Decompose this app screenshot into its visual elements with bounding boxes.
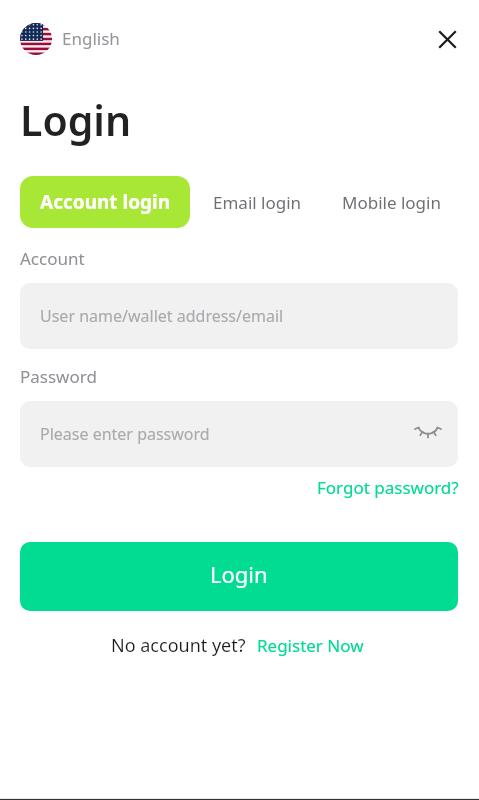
staticText: Login — [210, 559, 268, 589]
button[interactable]: User name/wallet address/email — [20, 283, 458, 349]
button[interactable]: Mobile login — [322, 176, 461, 228]
button[interactable]: Please enter password — [20, 401, 458, 467]
button[interactable]: Email login — [193, 176, 322, 228]
button[interactable]: English — [20, 23, 120, 55]
staticText: Account login — [40, 189, 171, 215]
staticText: English — [62, 27, 120, 50]
button[interactable]: Register Now — [257, 634, 364, 657]
staticText: Email login — [213, 191, 302, 214]
button[interactable]: Forgot password? — [317, 476, 459, 499]
staticText: Please enter password — [40, 423, 210, 445]
staticText: User name/wallet address/email — [40, 305, 284, 327]
staticText: Mobile login — [342, 191, 441, 214]
staticText: Login — [20, 92, 132, 148]
staticText: Account — [20, 247, 85, 270]
button[interactable]: Close — [429, 21, 465, 57]
staticText: Password — [20, 365, 97, 388]
button[interactable]: Login — [20, 542, 458, 611]
button[interactable]: Show password — [412, 416, 444, 448]
button[interactable]: Account login — [20, 176, 190, 228]
staticText: No account yet? — [111, 633, 246, 658]
